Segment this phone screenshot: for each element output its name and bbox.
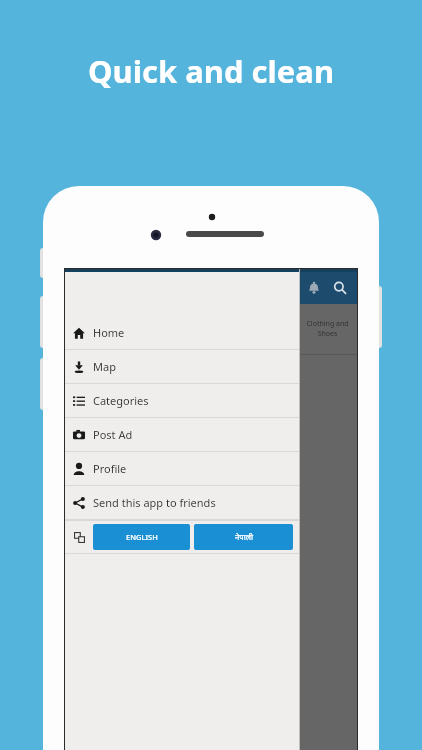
button[interactable]: Profile bbox=[65, 452, 299, 485]
staticText: Clothing and Shoes bbox=[306, 319, 349, 339]
staticText: Quick and clean bbox=[88, 50, 335, 92]
button[interactable]: Notifications bbox=[301, 275, 327, 301]
staticText: Send this app to friends bbox=[93, 495, 216, 510]
button[interactable]: Map bbox=[65, 350, 299, 383]
staticText: ENGLISH bbox=[126, 532, 158, 542]
staticText: Map bbox=[93, 359, 116, 374]
button[interactable]: Categories bbox=[65, 384, 299, 417]
button[interactable]: ENGLISH bbox=[93, 524, 190, 550]
button[interactable]: Search bbox=[327, 275, 353, 301]
button[interactable]: Post Ad bbox=[65, 418, 299, 451]
button[interactable]: नेपाली bbox=[194, 524, 293, 550]
staticText: Home bbox=[93, 325, 125, 340]
staticText: Profile bbox=[93, 461, 127, 476]
staticText: नेपाली bbox=[235, 532, 253, 542]
button[interactable]: Send this app to friends bbox=[65, 486, 299, 519]
button[interactable]: Home bbox=[65, 316, 299, 349]
staticText: Post Ad bbox=[93, 427, 133, 442]
staticText: Categories bbox=[93, 393, 149, 408]
